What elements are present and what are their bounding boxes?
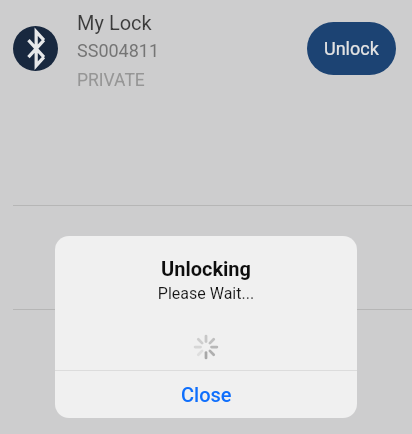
staticText: Unlock: [324, 38, 379, 59]
staticText: SS004811: [77, 40, 160, 61]
staticText: PRIVATE: [77, 70, 145, 91]
staticText: Please Wait...: [55, 284, 357, 303]
staticText: My Lock: [77, 11, 152, 34]
button[interactable]: Unlock: [307, 22, 396, 75]
staticText: Unlocking: [55, 257, 357, 280]
staticText: Close: [181, 383, 232, 406]
button[interactable]: Bluetooth device: [13, 26, 58, 71]
button[interactable]: Close: [55, 371, 357, 418]
other: Loading: [195, 336, 217, 358]
